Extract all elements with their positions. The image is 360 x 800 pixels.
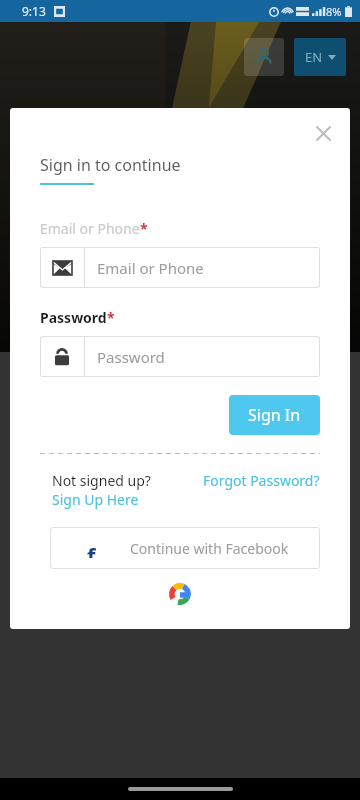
staticText: Continue with Facebook <box>130 539 289 558</box>
button[interactable]: Not signed up?Sign Up Here <box>52 471 176 509</box>
staticText: 9:13 <box>22 3 46 19</box>
staticText: Sign In <box>248 404 301 426</box>
staticText: Password <box>97 347 165 367</box>
staticText: 8% <box>326 4 342 19</box>
staticText: Forgot Password? <box>203 471 320 490</box>
staticText: * <box>107 308 115 327</box>
staticText: f <box>87 540 96 558</box>
staticText: Email or Phone <box>40 219 140 238</box>
button[interactable]: Close <box>308 118 338 148</box>
staticText: Password <box>40 308 107 327</box>
button[interactable]: f <box>50 527 320 569</box>
button[interactable]: Password <box>40 336 320 377</box>
staticText: Not signed up?Sign Up Here <box>52 471 176 509</box>
staticText: EN <box>305 48 323 66</box>
button[interactable]: Continue with Google <box>163 577 197 611</box>
button[interactable]: Email or Phone <box>40 247 320 288</box>
button[interactable]: EN <box>294 38 346 76</box>
button[interactable]: Account <box>244 38 284 76</box>
staticText: * <box>140 219 148 238</box>
button[interactable]: Sign In <box>229 395 320 435</box>
staticText: Sign in to continue <box>40 154 181 176</box>
staticText: Email or Phone <box>97 258 204 278</box>
button[interactable]: Forgot Password? <box>203 471 320 490</box>
